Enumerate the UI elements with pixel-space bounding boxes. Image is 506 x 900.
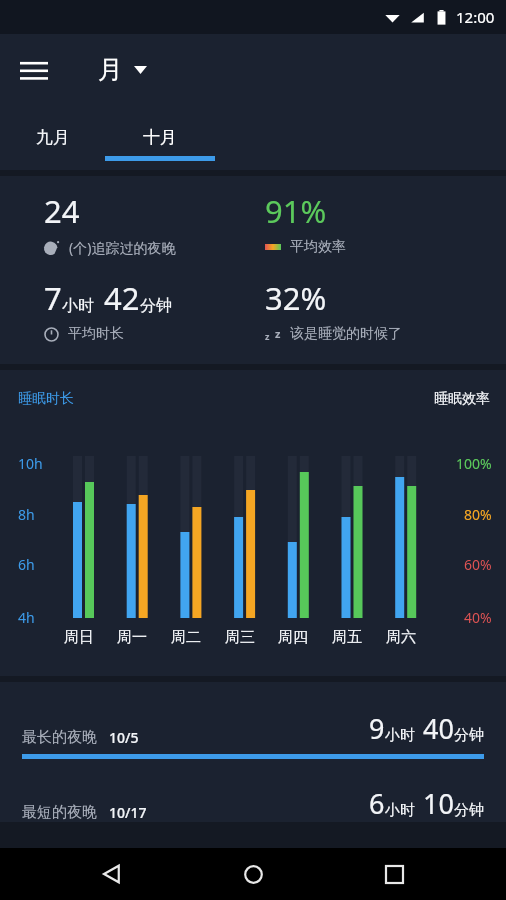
- button[interactable]: Recents: [366, 848, 422, 900]
- staticText: 8h: [18, 505, 35, 524]
- button[interactable]: 十月: [105, 104, 215, 170]
- button[interactable]: 月: [98, 54, 147, 85]
- staticText: 小时: [385, 726, 415, 745]
- staticText: 12:00: [456, 7, 495, 27]
- staticText: (个)追踪过的夜晚: [69, 238, 176, 257]
- staticText: 91%: [265, 190, 327, 232]
- staticText: 6h: [18, 555, 35, 574]
- staticText: 最长的夜晚: [22, 728, 97, 747]
- staticText: 最短的夜晚: [22, 803, 97, 822]
- staticText: 10h: [18, 454, 43, 473]
- staticText: 该是睡觉的时候了: [290, 325, 402, 343]
- staticText: 100%: [456, 454, 492, 473]
- staticText: 9: [369, 710, 385, 747]
- staticText: 4h: [18, 608, 35, 627]
- staticText: 7: [44, 277, 62, 319]
- staticText: 10/17: [109, 803, 147, 822]
- staticText: z: [275, 326, 281, 341]
- staticText: 睡眠效率: [434, 390, 490, 408]
- button[interactable]: Menu: [10, 45, 58, 93]
- staticText: 睡眠时长: [18, 390, 74, 408]
- button[interactable]: 九月: [8, 104, 98, 170]
- button[interactable]: 最短的夜晚: [0, 785, 506, 822]
- staticText: 月: [98, 54, 123, 85]
- staticText: 24: [44, 190, 80, 232]
- staticText: 40: [423, 710, 454, 747]
- staticText: z: [265, 330, 270, 342]
- staticText: 周六: [386, 628, 416, 647]
- staticText: 平均时长: [68, 325, 124, 343]
- staticText: 分钟: [454, 726, 484, 745]
- staticText: 平均效率: [290, 238, 346, 256]
- staticText: 6: [369, 785, 385, 822]
- staticText: 小时: [62, 296, 94, 316]
- staticText: 九月: [36, 127, 70, 148]
- button[interactable]: Back: [85, 848, 141, 900]
- button[interactable]: Home: [225, 848, 281, 900]
- staticText: 周二: [171, 628, 201, 647]
- staticText: 32%: [265, 277, 327, 319]
- staticText: 周一: [117, 628, 147, 647]
- staticText: 10/5: [109, 728, 139, 747]
- staticText: 周五: [332, 628, 362, 647]
- staticText: 周四: [278, 628, 308, 647]
- staticText: 十月: [143, 127, 177, 148]
- staticText: 40%: [464, 608, 492, 627]
- staticText: 80%: [464, 505, 492, 524]
- staticText: 10: [423, 785, 454, 822]
- staticText: 周三: [225, 628, 255, 647]
- staticText: 小时: [385, 801, 415, 820]
- staticText: 分钟: [454, 801, 484, 820]
- staticText: 周日: [64, 628, 94, 647]
- staticText: 42: [104, 277, 140, 319]
- staticText: 60%: [464, 555, 492, 574]
- button[interactable]: 最长的夜晚: [0, 710, 506, 747]
- staticText: 分钟: [140, 296, 172, 316]
